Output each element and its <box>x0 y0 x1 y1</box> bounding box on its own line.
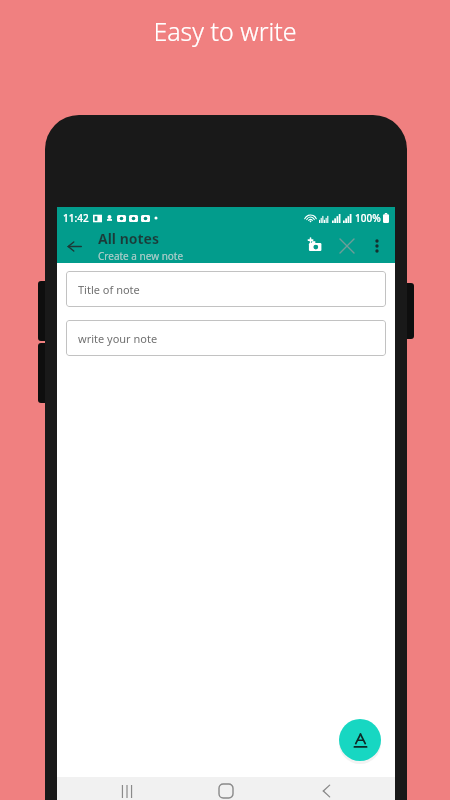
staticText: Create a new note <box>98 249 184 263</box>
button[interactable]: Add photo <box>299 230 331 262</box>
button[interactable]: Home <box>196 777 256 800</box>
button[interactable]: write your note <box>66 320 386 356</box>
staticText: All notes <box>98 229 159 248</box>
button[interactable]: Title of note <box>66 271 386 307</box>
staticText: Title of note <box>78 282 140 297</box>
button[interactable]: More options <box>363 232 391 260</box>
button[interactable]: Recents <box>97 777 157 800</box>
button[interactable]: Close <box>331 230 363 262</box>
staticText: 100% <box>355 211 381 225</box>
button[interactable]: Back <box>296 777 356 800</box>
staticText: 11:42 <box>63 211 89 225</box>
button[interactable]: Back <box>57 229 91 263</box>
staticText: write your note <box>78 331 158 346</box>
staticText: Easy to write <box>0 14 450 48</box>
button[interactable]: Text formatting <box>339 719 381 761</box>
